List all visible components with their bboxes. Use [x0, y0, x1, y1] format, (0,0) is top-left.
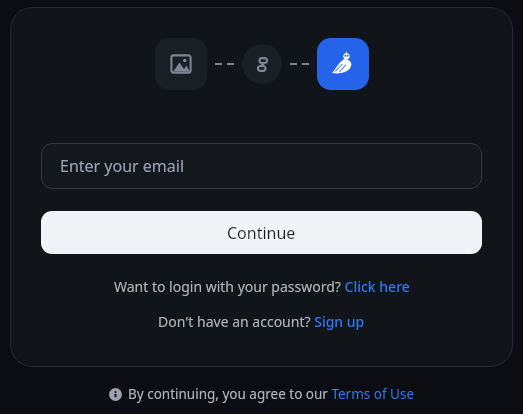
- button[interactable]: Image: [155, 38, 207, 90]
- staticText: Enter your email: [60, 155, 185, 177]
- staticText: Continue: [227, 222, 296, 244]
- button[interactable]: Want to login with your password? Click …: [114, 277, 410, 296]
- button[interactable]: Link: [242, 44, 282, 84]
- staticText: By continuing, you agree to our Terms of…: [128, 385, 415, 403]
- button[interactable]: By continuing, you agree to our Terms of…: [109, 385, 415, 403]
- button[interactable]: Enter your email: [41, 143, 482, 189]
- button[interactable]: Don't have an account? Sign up: [158, 312, 365, 331]
- button[interactable]: Continue: [41, 211, 482, 254]
- staticText: Don't have an account? Sign up: [158, 312, 365, 331]
- staticText: Want to login with your password? Click …: [114, 277, 410, 296]
- button[interactable]: App logo: [317, 38, 369, 90]
